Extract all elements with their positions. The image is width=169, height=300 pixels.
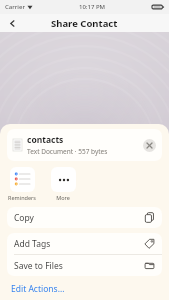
staticText: Edit Actions… [11, 283, 65, 295]
button[interactable]: contacts [7, 129, 162, 161]
button[interactable]: Save to Files [7, 255, 162, 276]
staticText: 10:17 PM [79, 3, 106, 11]
staticText: Share Contact [51, 17, 118, 30]
button[interactable]: Close [143, 139, 156, 152]
button[interactable]: Reminders [7, 167, 37, 201]
staticText: contacts [27, 134, 64, 146]
staticText: More [56, 194, 70, 201]
button[interactable]: Copy [7, 207, 162, 228]
staticText: Save to Files [14, 260, 144, 272]
staticText: Copy [14, 212, 144, 224]
button[interactable]: Add Tags [7, 233, 162, 254]
staticText: Add Tags [14, 238, 144, 250]
staticText: Text Document · 557 bytes [27, 147, 108, 156]
button[interactable]: More [48, 167, 78, 201]
button[interactable]: Edit Actions… [7, 282, 65, 298]
button[interactable]: Back [4, 15, 20, 31]
staticText: Reminders [8, 194, 36, 201]
staticText: Carrier [5, 3, 25, 11]
